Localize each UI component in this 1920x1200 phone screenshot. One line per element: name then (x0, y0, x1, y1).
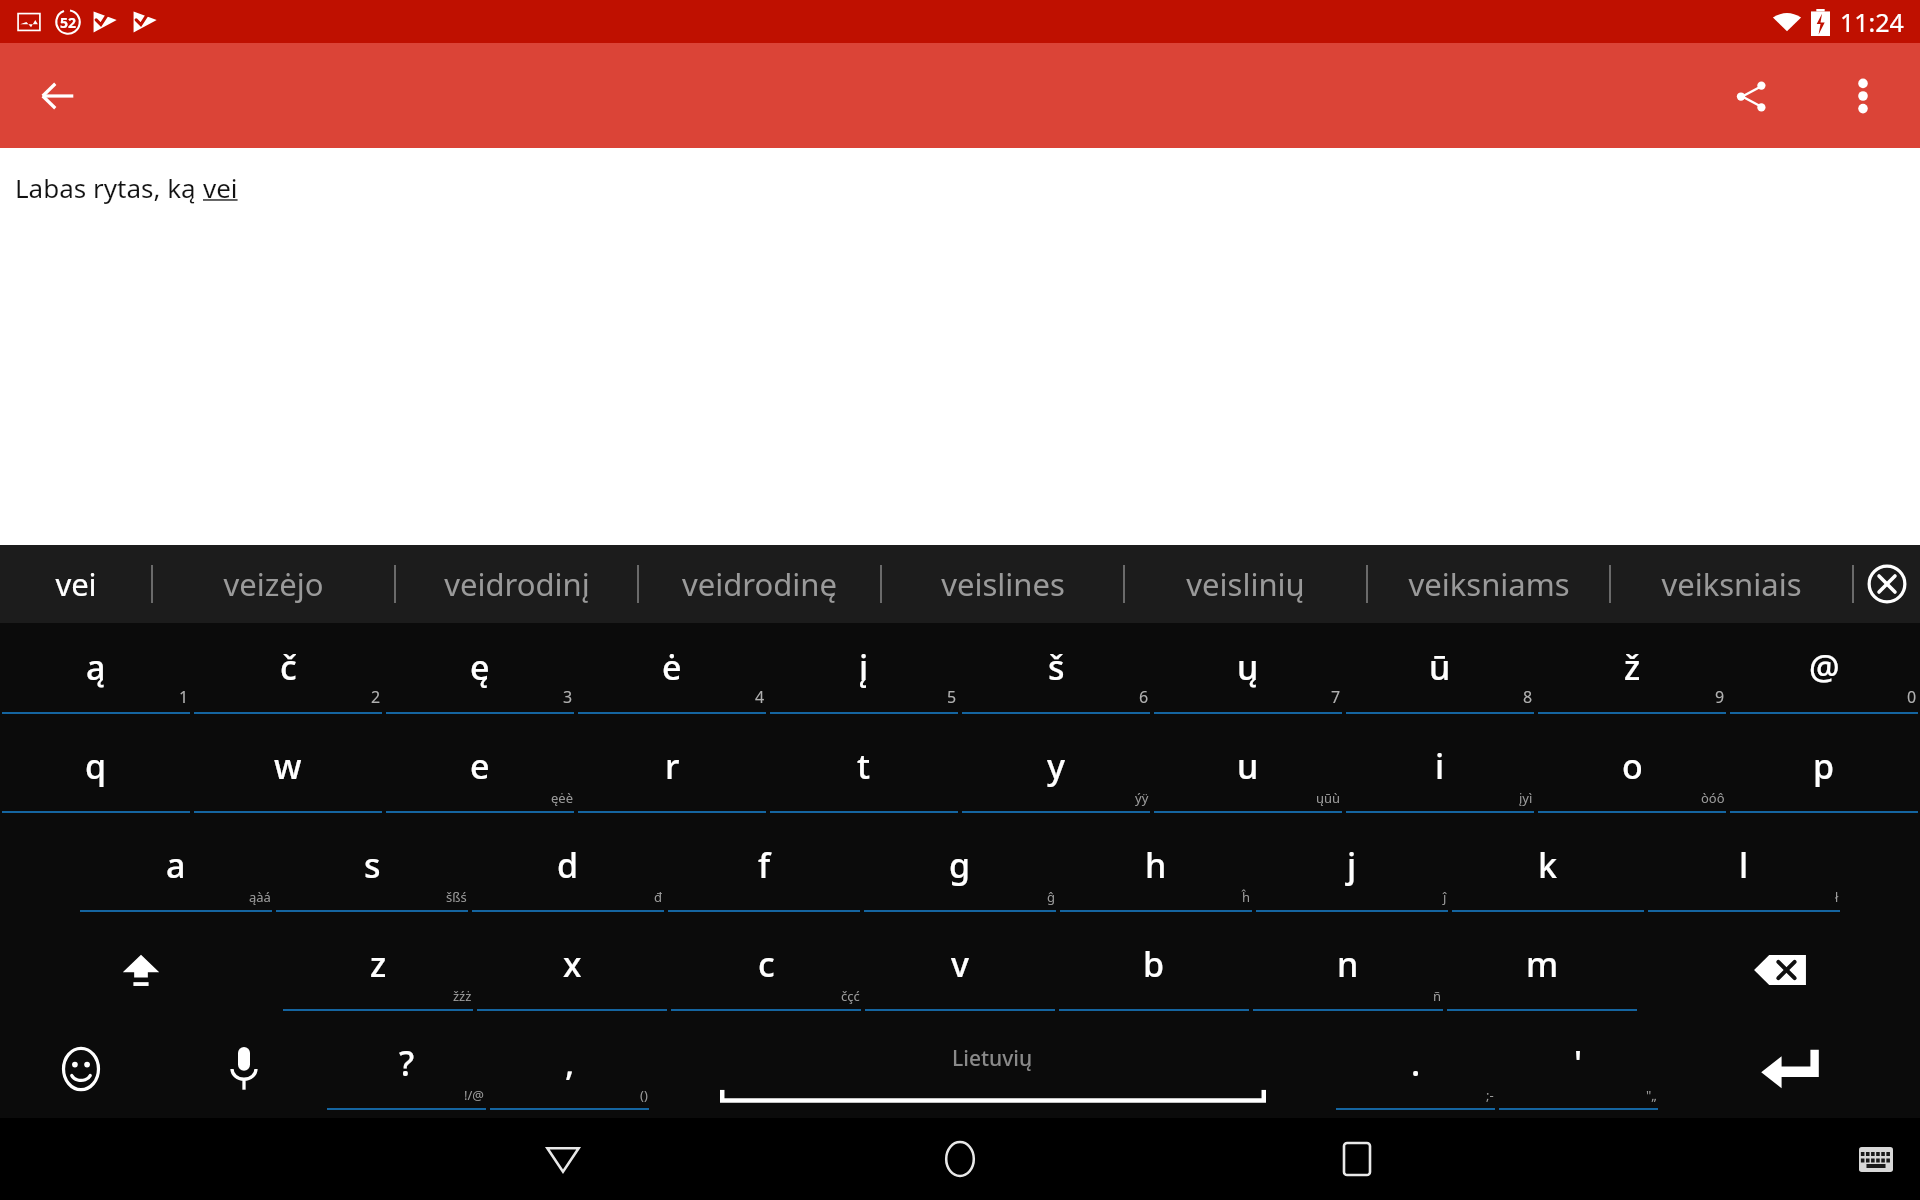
button[interactable]: Switch keyboard (1852, 1135, 1900, 1183)
button[interactable]: Lietuvių (651, 1019, 1334, 1118)
button[interactable]: x (475, 920, 669, 1019)
button[interactable]: s (274, 821, 470, 920)
button[interactable]: Clear suggestions (1854, 545, 1920, 623)
button[interactable]: m (1445, 920, 1639, 1019)
button[interactable]: a (78, 821, 274, 920)
button[interactable]: r (576, 722, 768, 821)
staticText: 3 (563, 686, 573, 708)
button[interactable]: veidrodinę (639, 545, 880, 623)
button[interactable]: Back (365, 1118, 761, 1200)
button[interactable]: More options (1836, 69, 1890, 123)
staticText: c (758, 941, 775, 987)
button[interactable]: . (1334, 1019, 1497, 1118)
button[interactable]: h (1058, 821, 1254, 920)
button[interactable]: p (1728, 722, 1920, 821)
staticText: ž (1624, 644, 1641, 690)
button[interactable]: y (960, 722, 1152, 821)
button[interactable]: l (1646, 821, 1842, 920)
staticText: n (1337, 941, 1359, 987)
button[interactable]: veislines (882, 545, 1123, 623)
button[interactable]: veizėjo (153, 545, 394, 623)
staticText: w (274, 743, 302, 789)
button[interactable]: veiksniams (1368, 545, 1609, 623)
staticText: u (1237, 743, 1259, 789)
staticText: đ (654, 888, 663, 906)
staticText: ' (1574, 1040, 1583, 1086)
button[interactable]: c (669, 920, 863, 1019)
button[interactable]: Shift (0, 920, 281, 1019)
button[interactable]: t (768, 722, 960, 821)
staticText: 9 (1715, 686, 1725, 708)
button[interactable]: ž (1536, 623, 1728, 722)
staticText: . (1411, 1040, 1421, 1086)
staticText: 6 (1139, 686, 1149, 708)
button[interactable]: u (1152, 722, 1344, 821)
staticText: ą (86, 644, 106, 690)
staticText: vei (55, 563, 97, 605)
button[interactable]: Emoji (0, 1019, 162, 1118)
button[interactable]: n (1251, 920, 1445, 1019)
button[interactable]: ' (1497, 1019, 1660, 1118)
button[interactable]: e (384, 722, 576, 821)
button[interactable]: k (1450, 821, 1646, 920)
button[interactable]: @ (1728, 623, 1920, 722)
staticText: ųūù (1316, 789, 1341, 807)
button[interactable]: į (768, 623, 960, 722)
staticText: ? (399, 1040, 415, 1086)
button[interactable]: ? (325, 1019, 488, 1118)
button[interactable]: w (192, 722, 384, 821)
staticText: ė (662, 644, 682, 690)
button[interactable]: Recents (1158, 1118, 1555, 1200)
staticText: h (1145, 842, 1167, 888)
staticText: f (758, 842, 771, 888)
button[interactable]: f (666, 821, 862, 920)
staticText: veizėjo (223, 563, 324, 605)
button[interactable]: č (192, 623, 384, 722)
button[interactable]: Voice input (162, 1019, 325, 1118)
staticText: ū (1429, 644, 1451, 690)
staticText: veislinių (1186, 563, 1305, 605)
staticText: 5 (947, 686, 957, 708)
staticText: r (665, 743, 680, 789)
staticText: k (1538, 842, 1558, 888)
button[interactable]: veiksniais (1611, 545, 1852, 623)
staticText: veiksniais (1661, 563, 1802, 605)
button[interactable]: g (862, 821, 1058, 920)
button[interactable]: Share (1722, 67, 1780, 125)
button[interactable]: , (488, 1019, 651, 1118)
button[interactable]: Backspace (1639, 920, 1920, 1019)
button[interactable]: ė (576, 623, 768, 722)
button[interactable]: q (0, 722, 192, 821)
button[interactable]: Enter (1660, 1019, 1920, 1118)
staticText: y (1047, 743, 1065, 789)
staticText: 4 (755, 686, 765, 708)
button[interactable]: ų (1152, 623, 1344, 722)
staticText: ł (1835, 888, 1839, 906)
staticText: p (1813, 743, 1835, 789)
button[interactable]: i (1344, 722, 1536, 821)
staticText: ĥ (1242, 888, 1251, 906)
button[interactable]: veidrodinį (396, 545, 637, 623)
button[interactable]: Back (30, 68, 86, 124)
button[interactable]: j (1254, 821, 1450, 920)
button[interactable]: ę (384, 623, 576, 722)
button[interactable]: š (960, 623, 1152, 722)
staticText: ýÿ (1135, 789, 1149, 807)
button[interactable]: ą (0, 623, 192, 722)
staticText: šßś (446, 888, 467, 906)
staticText: č (280, 644, 297, 690)
button[interactable]: z (281, 920, 475, 1019)
staticText: ĝ (1047, 888, 1055, 906)
button[interactable]: o (1536, 722, 1728, 821)
button[interactable]: v (863, 920, 1057, 1019)
button[interactable]: Home (761, 1118, 1158, 1200)
button[interactable]: veislinių (1125, 545, 1366, 623)
button[interactable]: d (470, 821, 666, 920)
staticText: ñ (1433, 987, 1442, 1005)
staticText: ĵ (1443, 888, 1447, 906)
staticText: veidrodinį (444, 563, 590, 605)
button[interactable]: ū (1344, 623, 1536, 722)
button[interactable]: b (1057, 920, 1251, 1019)
staticText: 7 (1331, 686, 1341, 708)
button[interactable]: vei (0, 545, 151, 623)
